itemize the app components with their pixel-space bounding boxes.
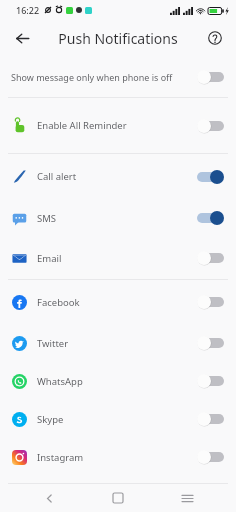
button[interactable]: WhatsApp [0,362,236,400]
button[interactable]: Show message only when phone is off [0,57,236,97]
staticText: Facebook [37,296,197,309]
button[interactable] [197,70,224,84]
staticText: SMS [37,212,197,225]
button[interactable] [197,374,224,388]
button[interactable]: Twitter [0,324,236,362]
button[interactable] [197,170,224,184]
button[interactable]: Recent apps [167,484,207,512]
button[interactable] [197,336,224,350]
button[interactable] [197,119,224,133]
button[interactable]: Instagram [0,438,236,476]
staticText: 16:22 [16,4,40,16]
button[interactable]: Enable All Reminder [0,98,236,153]
staticText: Instagram [37,451,197,464]
button[interactable]: Home [98,484,138,512]
button[interactable]: Back [8,24,36,52]
staticText: Twitter [37,337,197,350]
staticText: WhatsApp [37,375,197,388]
button[interactable]: Skype [0,400,236,438]
button[interactable] [197,450,224,464]
button[interactable]: SMS [0,199,236,237]
button[interactable] [197,412,224,426]
staticText: Show message only when phone is off [11,71,197,83]
staticText: Email [37,252,197,265]
staticText: Call alert [37,170,197,183]
button[interactable] [197,295,224,309]
staticText: Push Notifications [58,29,178,48]
staticText: Skype [37,413,197,426]
button[interactable]: Call alert [0,154,236,199]
button[interactable]: Back [29,484,69,512]
staticText: Enable All Reminder [37,119,197,132]
button[interactable]: Facebook [0,280,236,324]
button[interactable] [197,211,224,225]
button[interactable]: Help [202,25,228,51]
button[interactable]: Email [0,237,236,279]
button[interactable] [197,251,224,265]
